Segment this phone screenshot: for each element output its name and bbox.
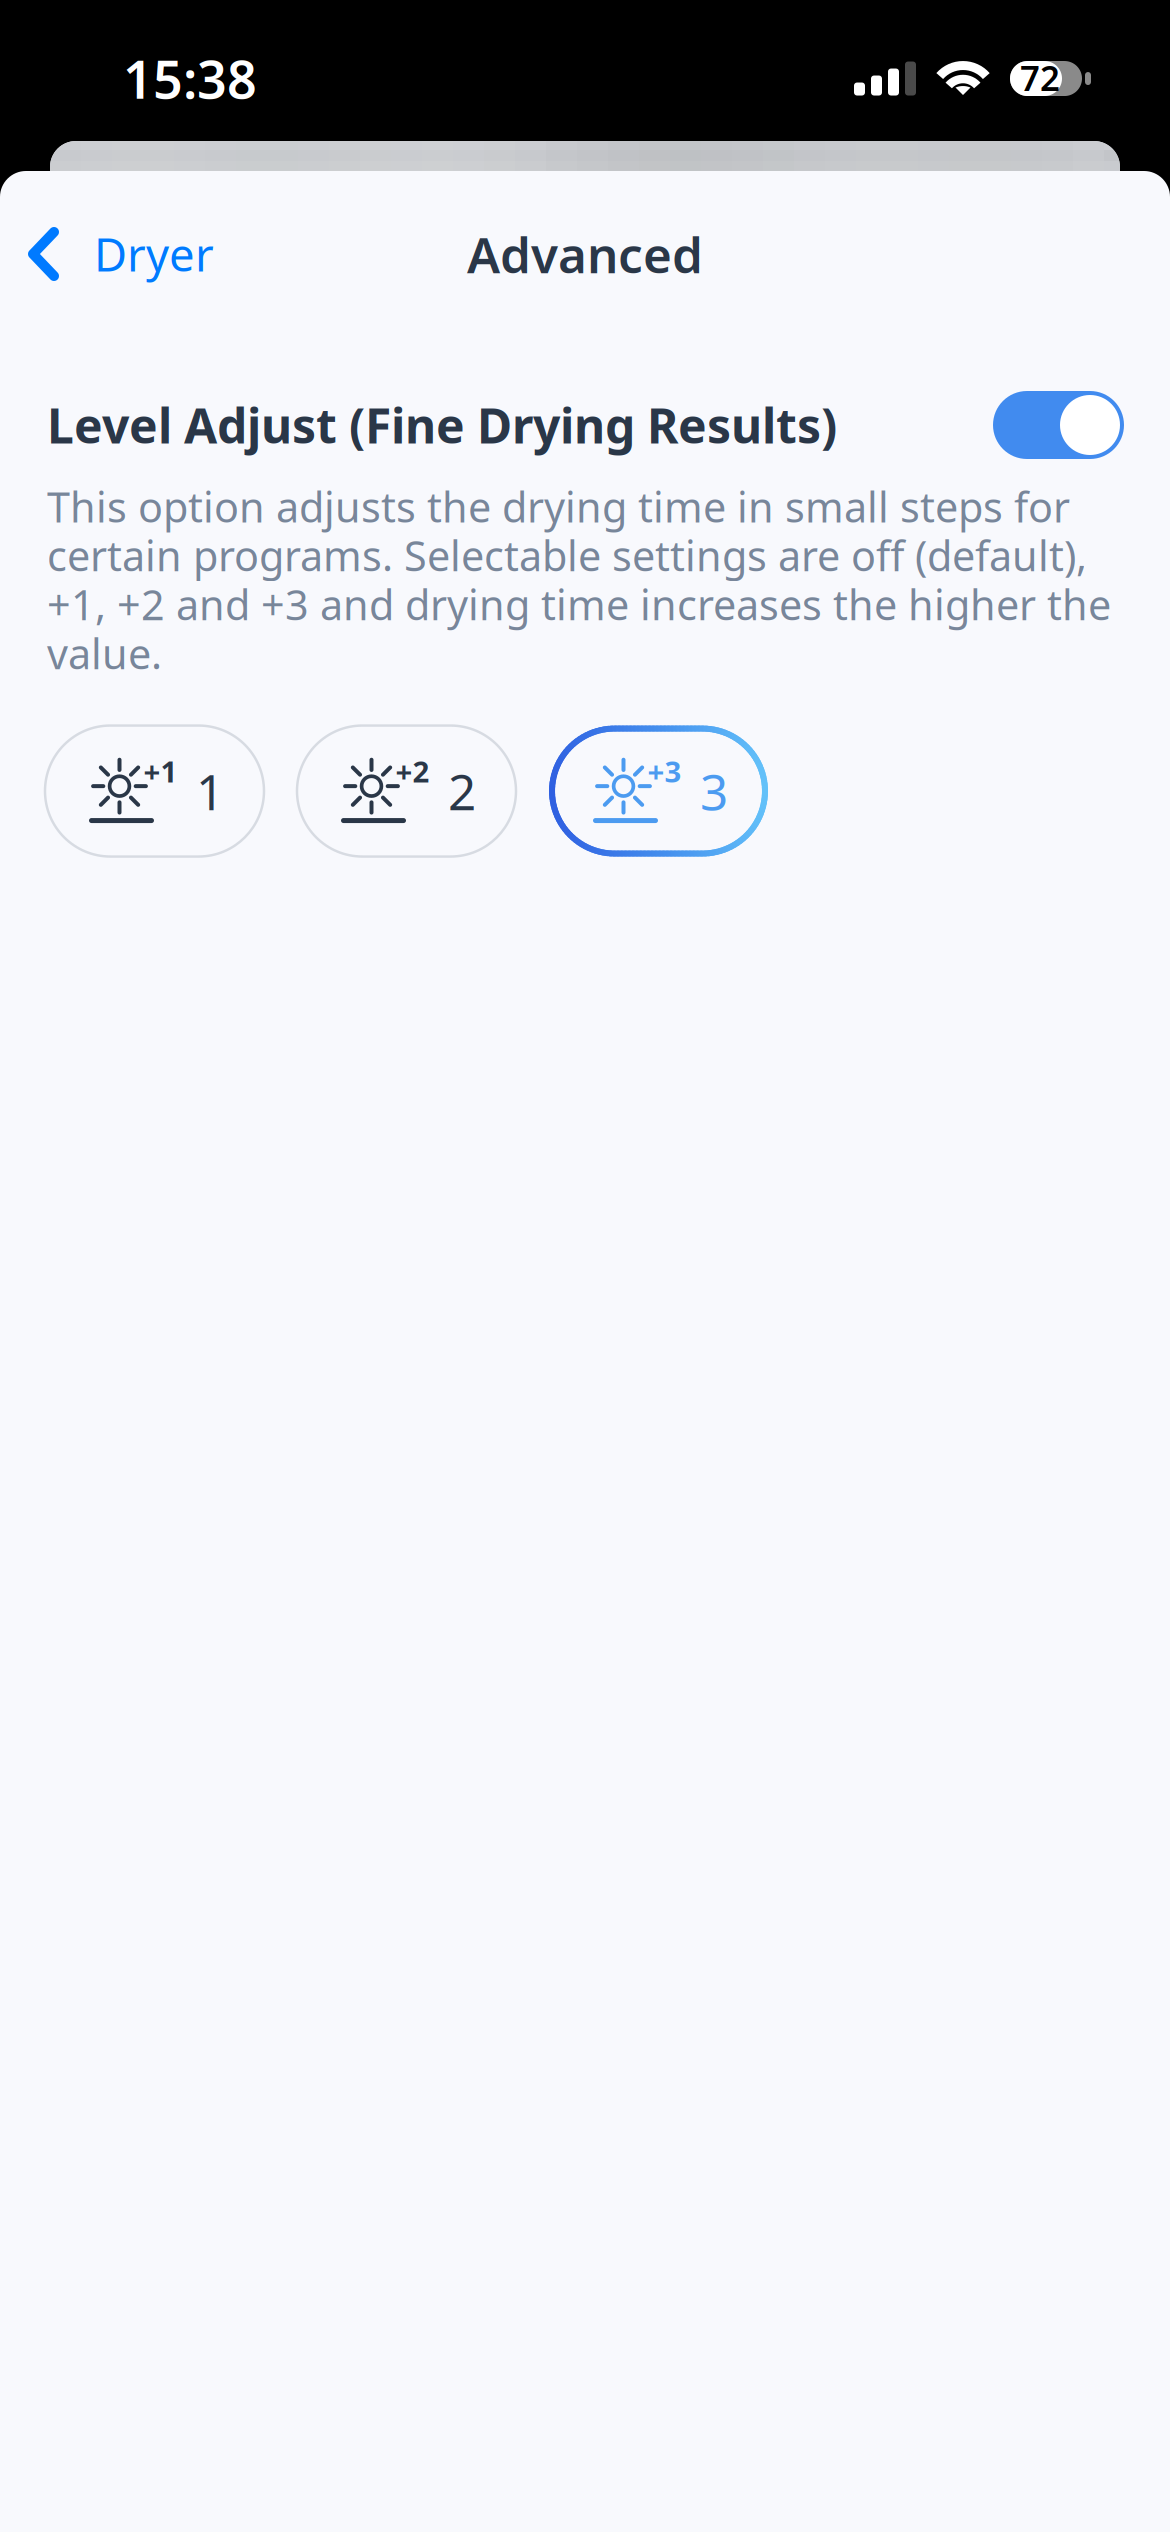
staticText: Dryer — [94, 224, 214, 284]
staticText: +2 — [395, 752, 429, 791]
staticText: 72 — [1020, 54, 1060, 100]
button[interactable]: Level +2 — [297, 726, 516, 857]
staticText: 1 — [196, 758, 224, 824]
staticText: 15:38 — [123, 44, 257, 113]
button[interactable]: Dryer — [0, 198, 238, 310]
staticText: This option adjusts the drying time in s… — [47, 479, 1111, 681]
staticText: Level Adjust (Fine Drying Results) — [47, 393, 837, 457]
button[interactable]: Level +3 — [549, 726, 768, 857]
staticText: 3 — [700, 758, 728, 824]
staticText: Advanced — [467, 221, 703, 287]
staticText: +3 — [647, 752, 681, 791]
button[interactable]: Level +1 — [45, 726, 264, 857]
staticText: +1 — [143, 752, 177, 791]
button[interactable]: Level Adjust — [993, 391, 1124, 459]
staticText: 2 — [448, 758, 476, 824]
